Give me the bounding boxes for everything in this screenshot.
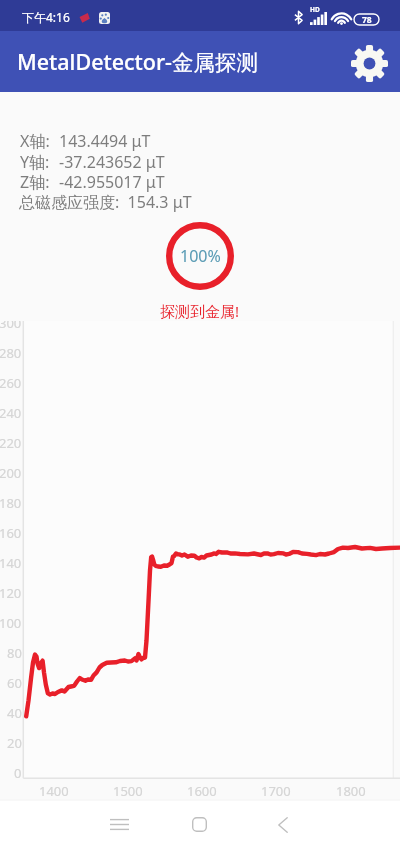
staticText: 200 [0,464,22,482]
staticText: 1500 [113,782,143,800]
staticText: 143.4494 μT [59,130,151,152]
staticText: 300 [0,321,22,332]
staticText: 0 [14,764,22,782]
button[interactable]: Home [181,806,218,843]
staticText: 下午4:16 [22,9,70,25]
staticText: 1600 [187,782,217,800]
staticText: 20 [7,734,22,752]
staticText: 100 [0,614,22,632]
staticText: -42.955017 μT [59,171,165,193]
staticText: X轴: [20,130,50,152]
staticText: 120 [0,584,22,602]
staticText: 78 [362,14,372,25]
staticText: 180 [0,494,22,512]
staticText: Y轴: [20,151,50,173]
staticText: 探测到金属! [160,301,240,321]
staticText: 160 [0,524,22,542]
staticText: 1400 [39,782,69,800]
staticText: 1700 [261,782,291,800]
staticText: 240 [0,404,22,422]
staticText: MetalDetector-金属探测 [17,47,258,76]
staticText: 总磁感应强度: 154.3 μT [19,191,192,213]
staticText: Z轴: [20,171,50,193]
staticText: 1800 [336,782,366,800]
staticText: -37.243652 μT [59,151,165,173]
staticText: 60 [7,674,22,692]
button[interactable]: Back [264,806,301,843]
button[interactable]: Settings [349,43,389,83]
staticText: 220 [0,434,22,452]
staticText: 260 [0,374,22,392]
staticText: 40 [7,704,22,722]
staticText: 280 [0,344,22,362]
staticText: 140 [0,554,22,572]
staticText: HD [310,5,320,14]
button[interactable]: Recents [101,806,138,843]
staticText: 100% [180,245,221,267]
staticText: 80 [7,644,22,662]
